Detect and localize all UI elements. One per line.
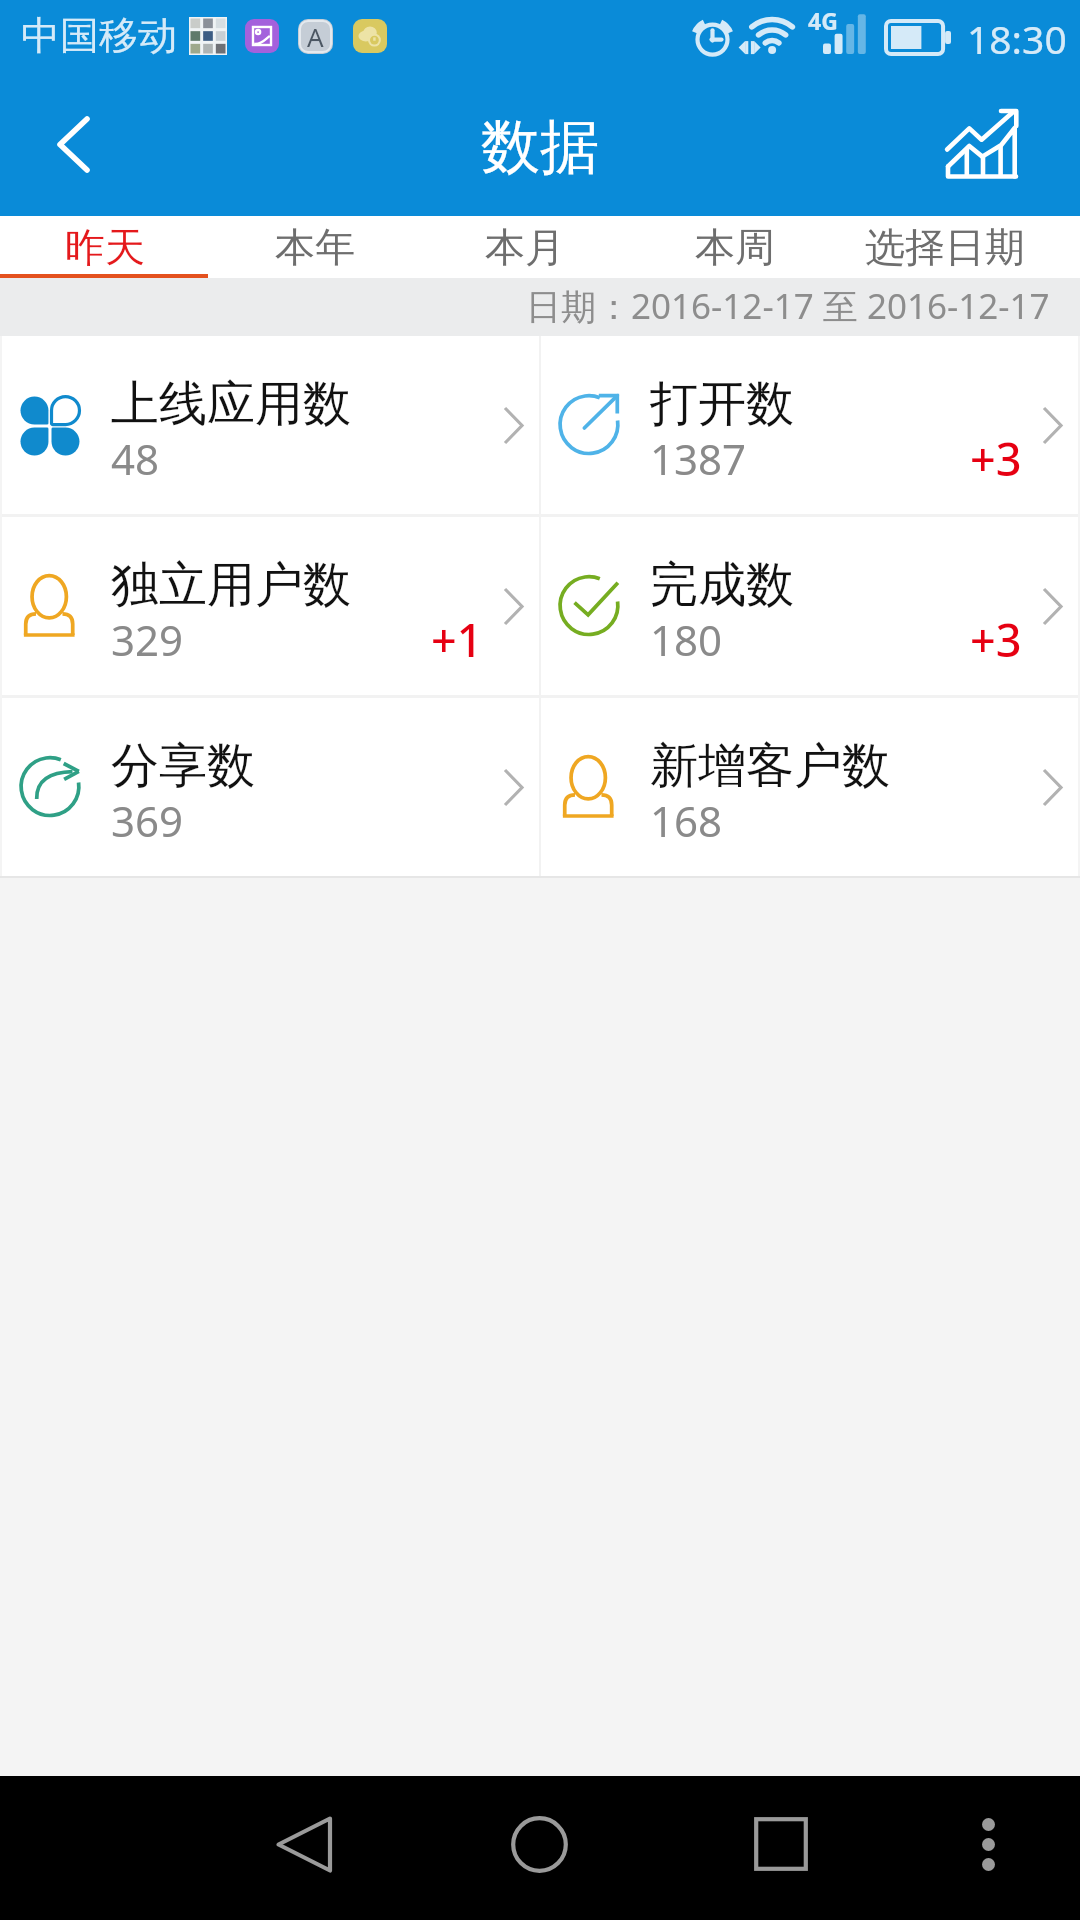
button[interactable]: 本月 <box>420 216 630 278</box>
staticText: 本月 <box>485 222 565 272</box>
button[interactable]: Home <box>486 1798 592 1890</box>
staticText: 打开数 <box>650 374 794 434</box>
button[interactable]: 选择日期 <box>840 216 1050 278</box>
button[interactable]: 本周 <box>630 216 840 278</box>
button[interactable]: Back <box>28 89 118 199</box>
button[interactable]: 分享数 <box>2 698 539 876</box>
staticText: 独立用户数 <box>111 555 351 615</box>
button[interactable]: 昨天 <box>0 216 210 278</box>
button[interactable]: 上线应用数 <box>2 336 539 514</box>
staticText: 上线应用数 <box>111 374 351 434</box>
staticText: 本年 <box>275 222 355 272</box>
button[interactable]: 独立用户数 <box>2 517 539 695</box>
button[interactable]: Statistics chart <box>931 89 1035 199</box>
button[interactable]: 打开数 <box>541 336 1078 514</box>
staticText: 完成数 <box>650 555 794 615</box>
staticText: 数据 <box>481 110 599 184</box>
button[interactable]: Recent apps <box>727 1798 834 1890</box>
staticText: +1 <box>431 609 483 670</box>
staticText: 18:30 <box>967 12 1067 65</box>
button[interactable]: More options <box>946 1798 1031 1890</box>
staticText: 329 <box>111 611 184 668</box>
button[interactable]: 本年 <box>210 216 420 278</box>
staticText: 昨天 <box>65 222 145 272</box>
button[interactable]: Back <box>250 1798 357 1890</box>
staticText: 中国移动 <box>21 11 177 60</box>
staticText: 分享数 <box>111 736 255 796</box>
staticText: 日期：2016-12-17 至 2016-12-17 <box>526 282 1050 330</box>
staticText: 168 <box>650 792 723 849</box>
staticText: 本周 <box>695 222 775 272</box>
staticText: 4G <box>808 5 838 36</box>
button[interactable]: 新增客户数 <box>541 698 1078 876</box>
staticText: 180 <box>650 611 723 668</box>
staticText: 选择日期 <box>865 222 1025 272</box>
staticText: 369 <box>111 792 184 849</box>
staticText: 新增客户数 <box>650 736 890 796</box>
staticText: 1387 <box>650 430 747 487</box>
staticText: 48 <box>111 430 160 487</box>
staticText: +3 <box>970 428 1022 489</box>
staticText: +3 <box>970 609 1022 670</box>
button[interactable]: 完成数 <box>541 517 1078 695</box>
staticText: A <box>307 19 324 54</box>
